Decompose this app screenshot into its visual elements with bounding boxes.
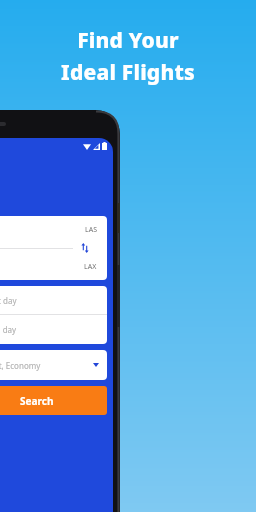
staticText: Search	[20, 394, 54, 408]
button[interactable]: Depart day	[0, 286, 107, 344]
staticText: LAX	[84, 262, 97, 272]
button[interactable]: Swap airports	[80, 243, 90, 253]
button[interactable]: LAS	[0, 216, 107, 280]
staticText: Return day	[0, 324, 17, 335]
button[interactable]: 1 Adult, Economy	[0, 350, 107, 380]
staticText: Find Your	[77, 26, 179, 55]
staticText: Depart day	[0, 295, 17, 306]
button[interactable]: Search	[0, 386, 107, 415]
staticText: 1 Adult, Economy	[0, 360, 41, 371]
staticText: LAS	[85, 225, 97, 235]
staticText: Ideal Flights	[61, 58, 195, 87]
